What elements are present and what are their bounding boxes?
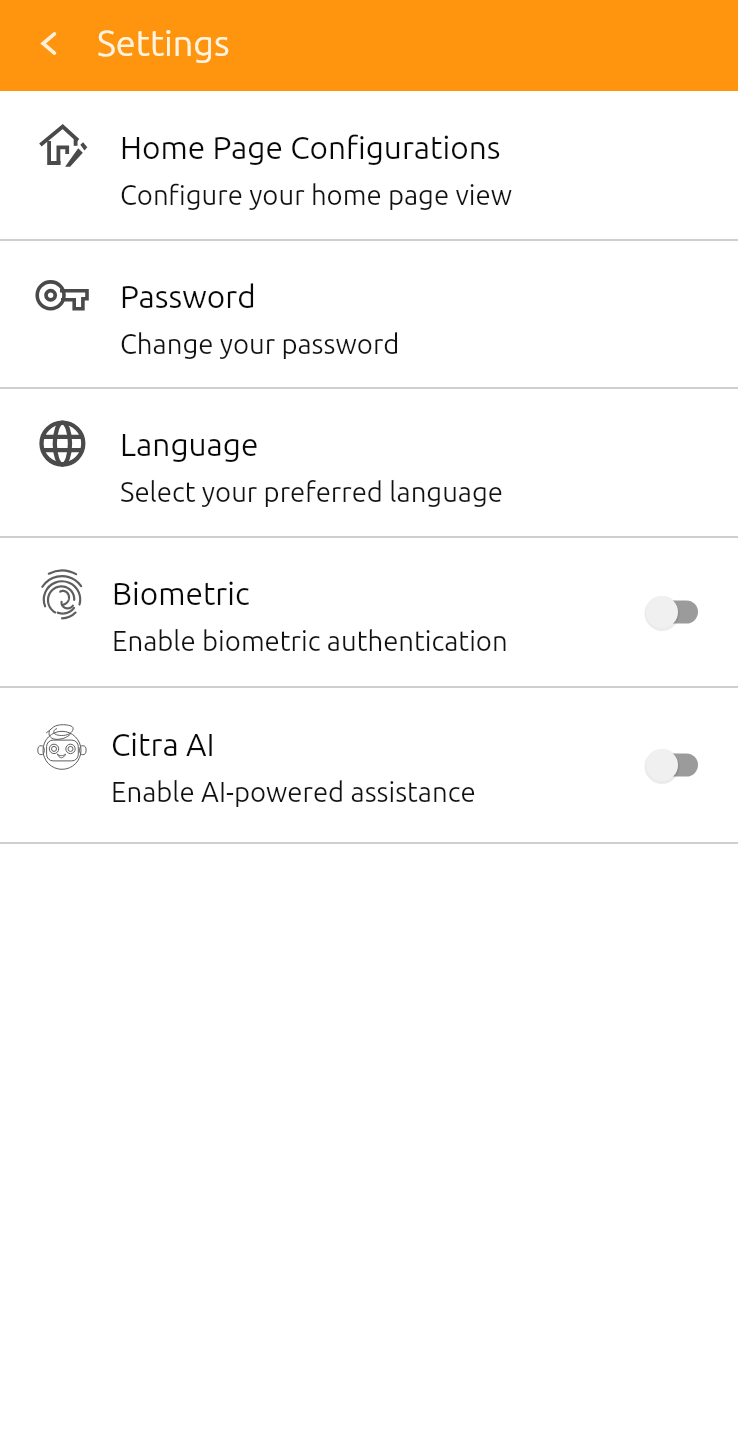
staticText: Select your preferred language — [120, 476, 503, 507]
button[interactable] — [0, 388, 738, 537]
button[interactable] — [0, 687, 738, 843]
staticText: Language — [120, 427, 259, 462]
button[interactable] — [0, 537, 738, 687]
staticText: Password — [120, 279, 256, 314]
staticText: Biometric — [112, 576, 250, 611]
button[interactable] — [0, 240, 738, 388]
staticText: Citra AI — [111, 727, 215, 762]
staticText: Enable biometric authentication — [112, 625, 508, 656]
staticText: Enable AI-powered assistance — [111, 776, 476, 807]
button[interactable]: Toggle — [640, 584, 708, 640]
staticText: Change your password — [120, 328, 400, 359]
staticText: Settings — [97, 22, 230, 62]
staticText: Configure your home page view — [120, 179, 513, 210]
button[interactable] — [0, 91, 738, 240]
button[interactable]: Toggle — [640, 737, 708, 793]
button[interactable]: Back — [20, 15, 76, 71]
staticText: Home Page Configurations — [120, 130, 501, 165]
